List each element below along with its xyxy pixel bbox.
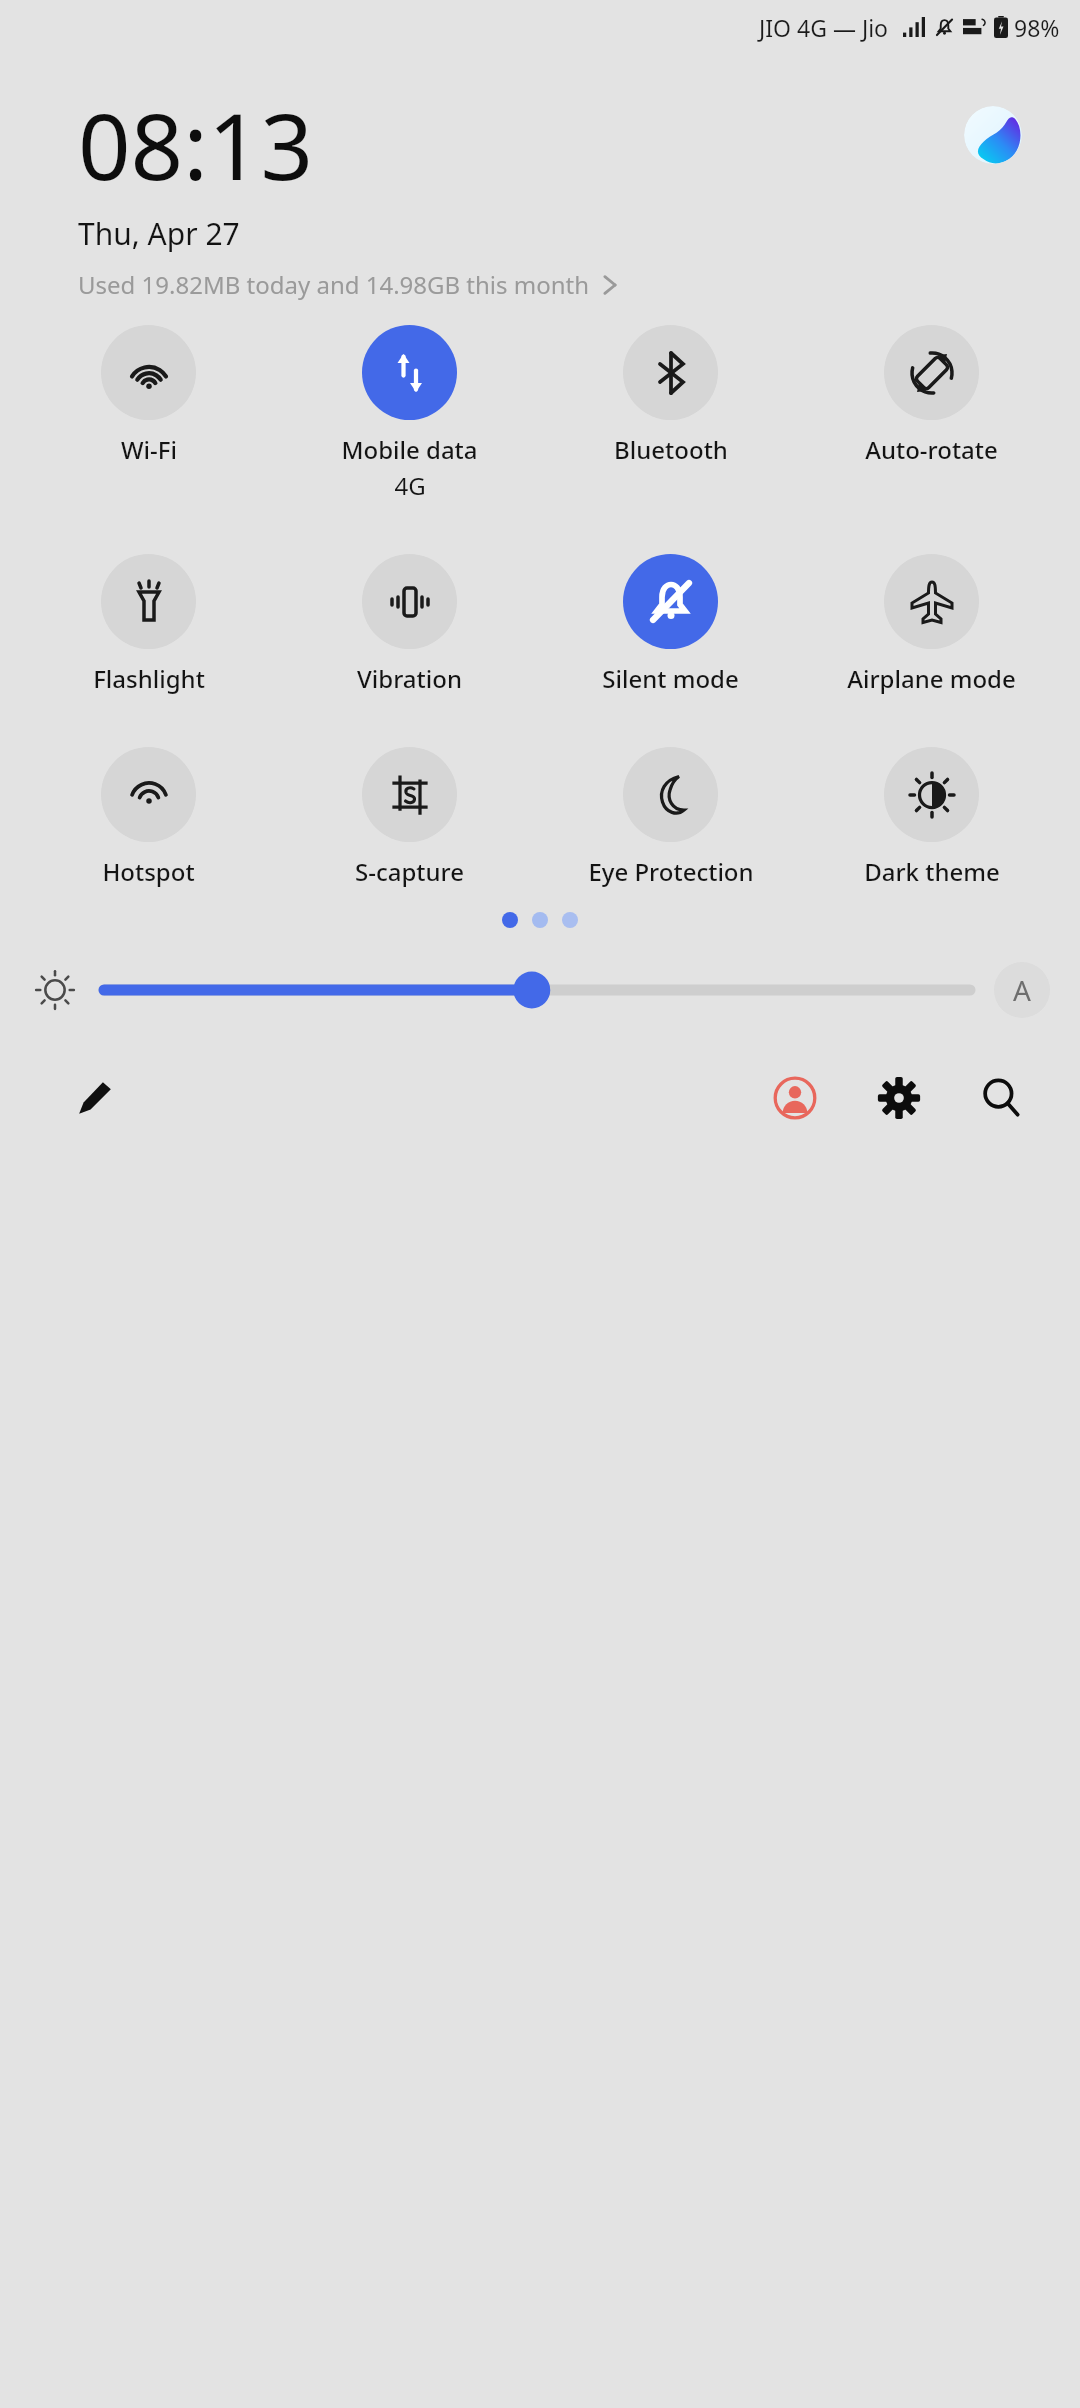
button[interactable]: Dark theme [801, 743, 1062, 892]
button[interactable]: Mobile data [279, 321, 540, 506]
button[interactable]: A [994, 962, 1050, 1018]
staticText: Eye Protection [588, 855, 754, 888]
button[interactable]: Hotspot [18, 743, 279, 892]
staticText: S-capture [355, 855, 464, 888]
staticText: 08:13 [78, 82, 314, 207]
staticText: Airplane mode [847, 662, 1016, 695]
staticText: Dark theme [864, 855, 1000, 888]
button[interactable]: Search [966, 1063, 1036, 1133]
button[interactable]: Wi-Fi [18, 321, 279, 470]
staticText: Used 19.82MB today and 14.98GB this mont… [78, 268, 590, 301]
staticText: Flashlight [93, 662, 205, 695]
button[interactable]: Used 19.82MB today and 14.98GB this mont… [78, 266, 618, 303]
staticText: Mobile data [341, 433, 478, 466]
staticText: Silent mode [602, 662, 739, 695]
button[interactable]: Edit [60, 1063, 130, 1133]
staticText: Thu, Apr 27 [78, 213, 240, 254]
button[interactable]: Assistant [964, 106, 1022, 164]
button[interactable]: Bluetooth [540, 321, 801, 470]
button[interactable] [104, 962, 970, 1018]
staticText: Vibration [357, 662, 462, 695]
staticText: 98% [1014, 12, 1060, 43]
staticText: A [1013, 971, 1031, 1009]
staticText: Wi-Fi [121, 433, 177, 466]
button[interactable]: Eye Protection [540, 743, 801, 892]
button[interactable]: Airplane mode [801, 550, 1062, 699]
button[interactable]: Settings [864, 1063, 934, 1133]
button[interactable]: Auto-rotate [801, 321, 1062, 470]
staticText: JIO 4G — Jio [759, 12, 889, 43]
staticText: Bluetooth [614, 433, 728, 466]
staticText: Hotspot [102, 855, 195, 888]
button[interactable]: Account [760, 1063, 830, 1133]
button[interactable]: Silent mode [540, 550, 801, 699]
staticText: 4G [394, 469, 426, 502]
button[interactable]: Flashlight [18, 550, 279, 699]
staticText: Auto-rotate [865, 433, 998, 466]
button[interactable]: S-capture [279, 743, 540, 892]
button[interactable]: Vibration [279, 550, 540, 699]
